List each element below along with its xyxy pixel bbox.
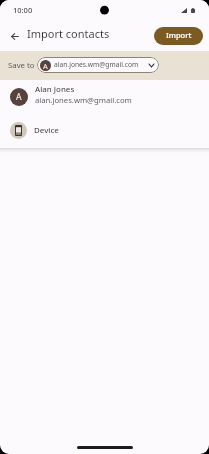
staticText: Import (166, 30, 192, 40)
staticText: alan.jones.wm@gmail.com (54, 60, 139, 69)
button[interactable]: A (37, 57, 159, 73)
button[interactable]: Import (154, 27, 203, 45)
staticText: Alan Jones (35, 84, 75, 95)
staticText: Import contacts (27, 26, 110, 41)
staticText: Device (34, 125, 59, 136)
staticText: A (43, 61, 48, 71)
button[interactable]: A (0, 80, 209, 114)
staticText: 10:00 (13, 5, 33, 15)
staticText: alan.jones.wm@gmail.com (35, 95, 132, 105)
staticText: Save to (8, 60, 35, 71)
button[interactable]: Device (0, 114, 209, 146)
button[interactable]: Back (5, 26, 25, 46)
staticText: A (16, 91, 22, 103)
